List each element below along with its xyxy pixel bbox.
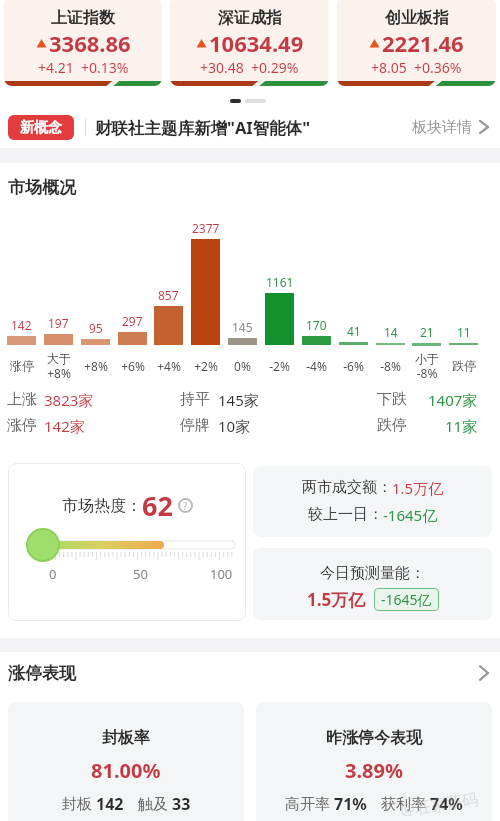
staticText: 3368.86: [49, 28, 131, 58]
button[interactable]: 封板率: [8, 702, 244, 821]
staticText: -6%: [343, 358, 364, 374]
staticText: -8%: [380, 358, 401, 374]
staticText: 11家: [445, 416, 478, 436]
staticText: +6%: [121, 358, 145, 374]
staticText: 板块详情: [412, 118, 472, 137]
staticText: 142: [11, 317, 32, 333]
staticText: 74%: [430, 793, 463, 815]
button[interactable]: 涨停表现: [0, 658, 500, 688]
staticText: 170: [306, 317, 327, 333]
staticText: 3823家: [44, 390, 94, 410]
staticText: 145: [232, 319, 253, 335]
staticText: 跌停: [377, 416, 407, 435]
staticText: +4%: [157, 358, 181, 374]
button[interactable]: 今日预测量能：: [253, 548, 492, 620]
staticText: 较上一日：: [308, 505, 383, 524]
staticText: 1407家: [428, 390, 478, 410]
staticText: 持平: [180, 390, 210, 409]
staticText: @荘家蓁码: [399, 788, 480, 820]
staticText: 11: [457, 324, 471, 340]
staticText: 1161: [266, 274, 294, 290]
staticText: 0: [49, 565, 57, 583]
staticText: 涨停: [10, 358, 34, 373]
button[interactable]: 新概念: [0, 106, 500, 148]
staticText: 145家: [218, 390, 259, 410]
staticText: 今日预测量能：: [320, 564, 425, 583]
staticText: 41: [347, 323, 361, 339]
button[interactable]: 昨涨停今表现: [256, 702, 492, 821]
staticText: 财联社主题库新增"AI智能体": [95, 116, 311, 139]
staticText: 21: [420, 324, 434, 340]
staticText: 142: [96, 793, 124, 815]
staticText: +8%: [84, 358, 108, 374]
staticText: 市场热度：: [62, 496, 142, 516]
staticText: 62: [142, 487, 173, 524]
staticText: 昨涨停今表现: [326, 728, 422, 748]
staticText: +2%: [194, 358, 218, 374]
staticText: 1.5万亿: [392, 478, 444, 498]
staticText: 81.00%: [91, 757, 161, 784]
staticText: 100: [210, 565, 233, 583]
staticText: ?: [183, 499, 188, 513]
staticText: +4.21 +0.13%: [38, 58, 129, 77]
staticText: 跌停: [452, 358, 476, 373]
staticText: -1645亿: [381, 590, 432, 609]
staticText: 71%: [334, 793, 367, 815]
staticText: 上证指数: [51, 8, 115, 28]
staticText: 3.89%: [345, 757, 403, 784]
staticText: 触及: [138, 793, 172, 813]
staticText: 50: [133, 565, 148, 583]
staticText: 10634.49: [209, 28, 304, 58]
staticText: 封板: [62, 793, 96, 813]
staticText: 2377: [192, 220, 220, 236]
staticText: 297: [122, 313, 143, 329]
staticText: 1.5万亿: [307, 588, 366, 611]
staticText: 封板率: [102, 728, 150, 748]
staticText: 33: [172, 793, 191, 815]
button[interactable]: 深证成指: [170, 0, 329, 86]
staticText: 857: [158, 287, 179, 303]
staticText: 大于 +8%: [47, 351, 71, 381]
button[interactable]: 两市成交额：: [253, 466, 492, 537]
button[interactable]: 上证指数: [4, 0, 162, 86]
staticText: 下跌: [377, 390, 407, 409]
staticText: 高开率: [285, 793, 334, 813]
staticText: 小于 -8%: [415, 351, 439, 381]
staticText: 停牌: [180, 416, 210, 435]
staticText: 获利率: [381, 793, 430, 813]
staticText: 95: [89, 320, 103, 336]
staticText: -2%: [269, 358, 290, 374]
staticText: +30.48 +0.29%: [200, 58, 299, 77]
staticText: 142家: [44, 416, 85, 436]
button[interactable]: 市场热度：: [8, 463, 246, 621]
staticText: +8.05 +0.36%: [371, 58, 462, 77]
button[interactable]: 创业板指: [337, 0, 496, 86]
staticText: 创业板指: [385, 8, 449, 28]
staticText: 2221.46: [382, 28, 464, 58]
staticText: 14: [384, 324, 398, 340]
staticText: 197: [48, 315, 69, 331]
staticText: 深证成指: [218, 8, 282, 28]
staticText: 涨停: [7, 416, 37, 435]
staticText: -1645亿: [383, 505, 438, 525]
staticText: -4%: [306, 358, 327, 374]
staticText: 市场概况: [8, 177, 76, 198]
staticText: 0%: [234, 358, 251, 374]
staticText: 新概念: [20, 119, 62, 137]
staticText: 上涨: [7, 390, 37, 409]
staticText: 两市成交额：: [302, 478, 392, 497]
staticText: 10家: [218, 416, 251, 436]
staticText: 涨停表现: [8, 663, 76, 684]
